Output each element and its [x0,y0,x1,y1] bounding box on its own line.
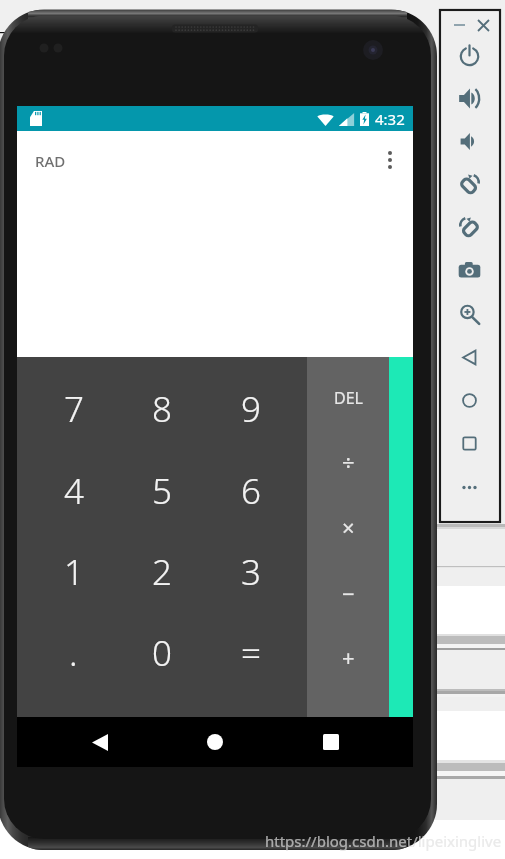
staticText: 1 [64,548,84,596]
button[interactable]: Recent apps [314,725,348,759]
staticText: 6 [241,467,261,515]
staticText: ÷ [342,447,355,477]
button[interactable]: 9 [206,368,295,449]
staticText: . [69,629,78,677]
button[interactable]: Volume down [455,127,483,155]
button[interactable]: 3 [206,531,295,612]
staticText: × [342,512,355,542]
button[interactable]: 8 [117,368,206,449]
button[interactable]: Volume up [455,84,483,112]
button[interactable]: 5 [117,450,206,531]
button[interactable]: Home [198,725,232,759]
button[interactable]: Back [83,725,117,759]
button[interactable]: Close [472,14,494,36]
staticText: 5 [152,467,172,515]
button[interactable]: − [307,560,389,625]
button[interactable]: Minimize [448,14,470,36]
button[interactable]: 4 [29,450,118,531]
button[interactable]: More [455,473,483,501]
staticText: − [342,578,355,608]
staticText: DEL [334,387,363,409]
button[interactable]: Back [455,343,483,371]
button[interactable]: Rotate right [455,213,483,241]
button[interactable]: Power [455,41,483,69]
staticText: 3 [241,548,261,596]
button[interactable]: Zoom [455,300,483,328]
staticText: 0 [152,629,172,677]
button[interactable]: Take screenshot [455,256,483,284]
button[interactable]: Home [455,386,483,414]
button[interactable]: Rotate left [455,170,483,198]
button[interactable]: 1 [29,531,118,612]
button[interactable]: = [206,612,295,693]
button[interactable]: ÷ [307,429,389,494]
button[interactable]: + [307,624,389,689]
button[interactable]: 6 [206,450,295,531]
button[interactable]: 2 [117,531,206,612]
staticText: 4:32 [375,109,405,129]
staticText: 7 [64,385,84,433]
button[interactable]: Overview [455,429,483,457]
staticText: RAD [35,151,66,171]
staticText: 2 [152,548,172,596]
staticText: 4 [64,467,84,515]
button[interactable]: . [29,612,118,693]
staticText: + [342,642,355,672]
button[interactable]: More options [373,143,407,177]
button[interactable]: 0 [117,612,206,693]
staticText: 8 [152,385,172,433]
staticText: = [241,629,261,677]
button[interactable]: × [307,494,389,559]
button[interactable]: 7 [29,368,118,449]
staticText: 9 [241,385,261,433]
staticText: https://blog.csdn.net/lipeixinglive [265,831,502,851]
button[interactable]: DEL [307,365,389,430]
